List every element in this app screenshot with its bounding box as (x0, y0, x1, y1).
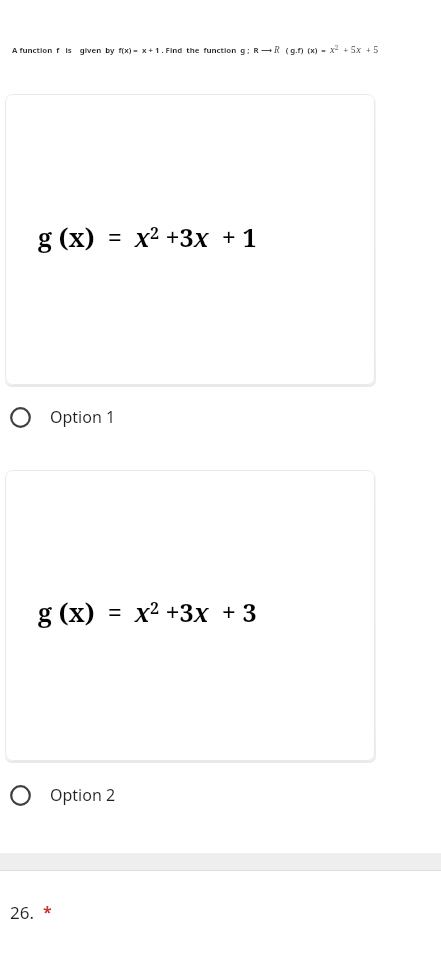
staticText: Option 2 (50, 784, 116, 806)
staticText: 26. (10, 901, 35, 924)
staticText: g (x) = x2 +3x + 3 (38, 595, 257, 629)
staticText: Option 1 (50, 406, 116, 428)
staticText: g (x) = x2 +3x + 1 (38, 220, 257, 254)
staticText: A function f is given by f(x) = x + 1 . … (12, 43, 379, 56)
button[interactable]: Option 2 (0, 773, 441, 817)
button[interactable]: Option 1 (0, 395, 441, 439)
staticText: * (43, 901, 52, 923)
